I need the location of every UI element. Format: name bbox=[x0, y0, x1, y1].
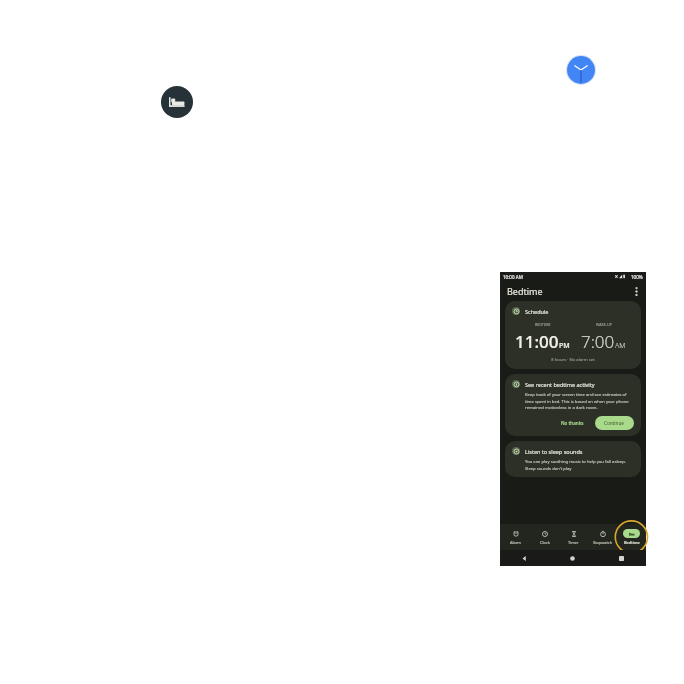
button[interactable]: More options bbox=[630, 285, 642, 297]
staticText: Alarm bbox=[510, 540, 521, 545]
button[interactable]: Alarm bbox=[500, 524, 530, 550]
staticText: Listen to sleep sounds bbox=[525, 448, 583, 455]
button[interactable]: Bedtime bbox=[161, 86, 193, 118]
staticText: Continue bbox=[604, 420, 625, 426]
staticText: 100% bbox=[631, 274, 643, 280]
button[interactable]: Stopwatch bbox=[588, 524, 617, 550]
button[interactable]: Home bbox=[548, 550, 597, 566]
staticText: PM bbox=[559, 341, 570, 351]
staticText: See recent bedtime activity bbox=[525, 381, 595, 388]
staticText: Bedtime bbox=[624, 540, 640, 545]
button[interactable]: Schedule bbox=[505, 301, 641, 369]
staticText: BEDTIME bbox=[535, 322, 551, 327]
button[interactable]: Continue bbox=[595, 416, 634, 430]
staticText: Timer bbox=[568, 540, 579, 545]
staticText: 8 hours · No alarm set bbox=[512, 357, 634, 363]
button[interactable]: Clock app bbox=[566, 55, 596, 85]
button[interactable]: Back bbox=[500, 550, 548, 566]
staticText: Clock bbox=[540, 540, 550, 545]
button[interactable]: No thanks bbox=[555, 417, 590, 429]
button[interactable]: Recent apps bbox=[597, 550, 646, 566]
staticText: 10:00 AM bbox=[503, 274, 523, 280]
button[interactable]: Listen to sleep sounds bbox=[505, 441, 641, 477]
staticText: Schedule bbox=[525, 308, 549, 315]
button[interactable]: Clock bbox=[530, 524, 559, 550]
staticText: Stopwatch bbox=[593, 540, 613, 545]
button[interactable]: See recent bedtime activity bbox=[505, 374, 641, 436]
staticText: 7:00 bbox=[581, 330, 615, 353]
staticText: Bedtime bbox=[507, 285, 543, 297]
staticText: You can play soothing music to help you … bbox=[525, 459, 634, 471]
staticText: WAKE-UP bbox=[596, 322, 612, 327]
staticText: No thanks bbox=[561, 420, 584, 426]
staticText: Keep track of your screen time and see e… bbox=[525, 392, 634, 410]
button[interactable]: Bedtime bbox=[617, 524, 646, 550]
button[interactable]: Timer bbox=[559, 524, 588, 550]
staticText: 11:00 bbox=[515, 330, 559, 353]
staticText: AM bbox=[615, 341, 626, 351]
